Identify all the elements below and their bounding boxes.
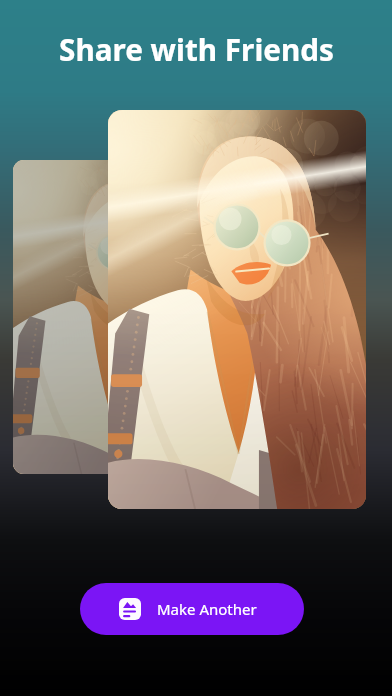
staticText: Make Another [157, 599, 257, 619]
button[interactable]: Make Another [80, 583, 304, 635]
staticText: Share with Friends [59, 29, 334, 69]
